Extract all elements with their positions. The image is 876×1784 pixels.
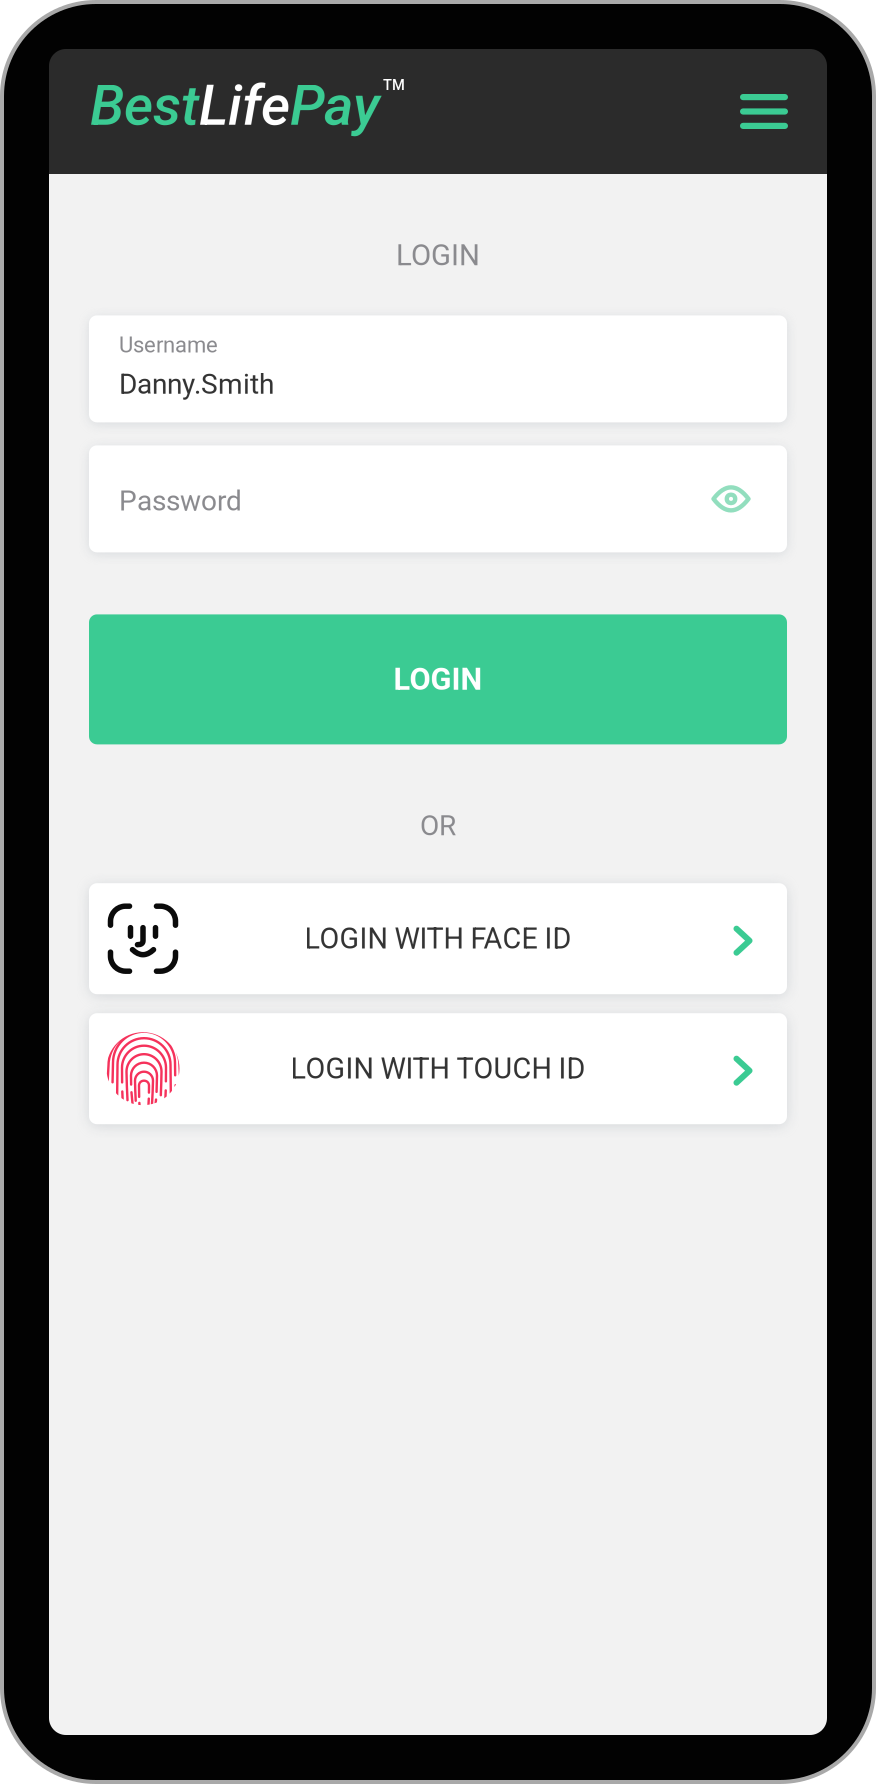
staticText: Username xyxy=(119,332,218,358)
staticText: OR xyxy=(420,809,456,842)
staticText: Password xyxy=(119,484,242,517)
button[interactable]: Menu xyxy=(740,76,788,146)
button[interactable]: LOGIN xyxy=(89,614,787,744)
staticText: LOGIN xyxy=(396,238,480,272)
staticText: Best xyxy=(90,73,199,138)
staticText: LOGIN xyxy=(393,661,482,697)
staticText: LOGIN WITH FACE ID xyxy=(304,922,571,955)
staticText: TM xyxy=(383,76,405,94)
button[interactable]: LOGIN WITH TOUCH ID xyxy=(89,1013,787,1124)
button[interactable]: Show password xyxy=(709,479,753,519)
button[interactable]: LOGIN WITH FACE ID xyxy=(89,883,787,994)
staticText: LOGIN WITH TOUCH ID xyxy=(290,1052,585,1085)
staticText: Danny.Smith xyxy=(119,368,274,401)
staticText: Pay xyxy=(290,73,380,138)
button[interactable]: Best xyxy=(90,83,405,139)
staticText: Life xyxy=(199,73,290,138)
